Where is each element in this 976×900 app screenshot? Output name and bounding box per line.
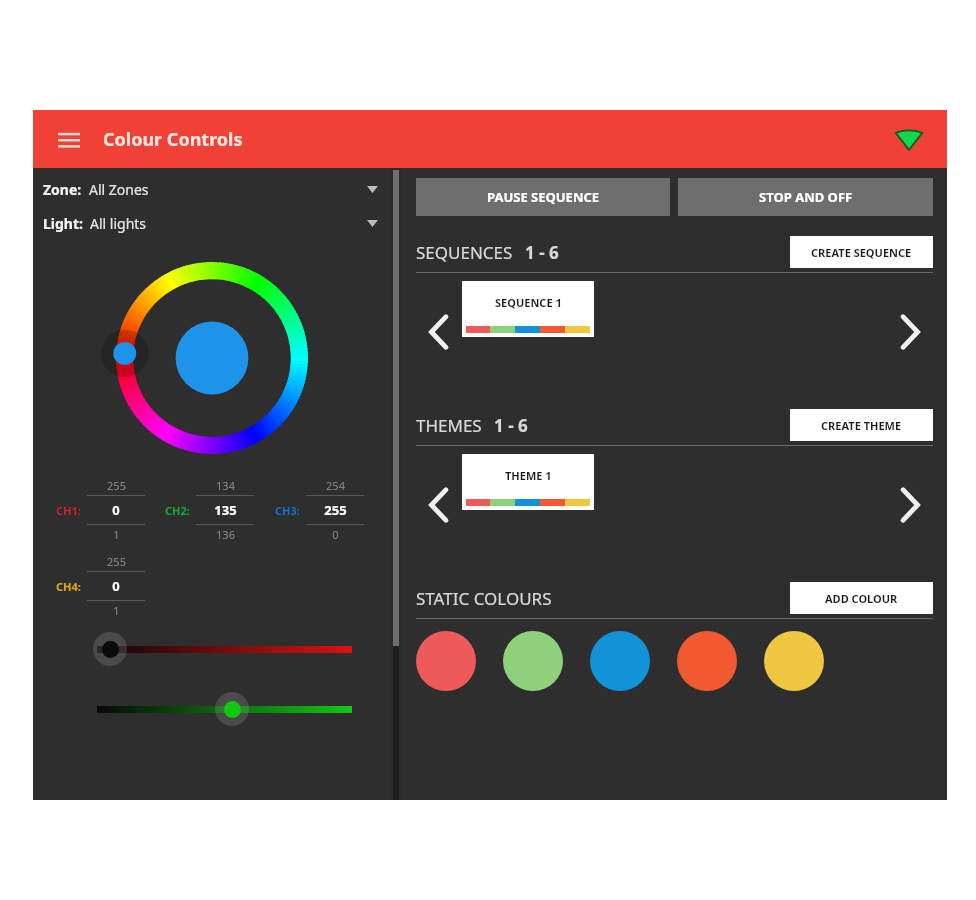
button[interactable]: ADD COLOUR [790, 582, 933, 614]
staticText: SEQUENCE 1 [495, 295, 562, 310]
staticText: 1 [113, 527, 120, 542]
staticText: ADD COLOUR [825, 591, 898, 606]
staticText: CH1: [56, 503, 81, 518]
staticText: CH4: [56, 579, 81, 594]
button[interactable]: 134 [196, 478, 254, 542]
button[interactable]: Static colour swatch [590, 631, 650, 691]
staticText: 1 - 6 [525, 241, 559, 264]
staticText: STOP AND OFF [759, 188, 853, 206]
staticText: Light: [43, 214, 83, 233]
staticText: 135 [214, 501, 237, 519]
button[interactable]: STOP AND OFF [678, 178, 933, 216]
button[interactable]: 255 [87, 554, 145, 618]
staticText: All lights [90, 214, 147, 233]
staticText: THEMES [416, 414, 482, 437]
button[interactable]: Static colour swatch [764, 631, 824, 691]
button[interactable]: Brightness slider [33, 632, 390, 666]
staticText: 136 [216, 527, 235, 542]
button[interactable]: 255 [87, 478, 145, 542]
staticText: 134 [216, 478, 235, 493]
button[interactable]: Static colour swatch [677, 631, 737, 691]
staticText: THEME 1 [505, 468, 552, 483]
staticText: 0 [112, 577, 120, 595]
button[interactable]: Static colour swatch [416, 631, 476, 691]
staticText: STATIC COLOURS [416, 587, 552, 610]
button[interactable]: Next [887, 482, 933, 528]
staticText: SEQUENCES [416, 241, 513, 264]
button[interactable]: Zone: [33, 176, 390, 202]
staticText: Colour Controls [103, 127, 243, 152]
button[interactable]: Next [887, 309, 933, 355]
staticText: Zone: [43, 180, 82, 199]
button[interactable]: Light: [33, 210, 390, 236]
button[interactable]: Previous [416, 482, 462, 528]
button[interactable]: Open navigation menu [49, 119, 89, 159]
staticText: PAUSE SEQUENCE [487, 188, 600, 206]
button[interactable]: CREATE THEME [790, 409, 933, 441]
staticText: 255 [324, 501, 347, 519]
button[interactable]: PAUSE SEQUENCE [416, 178, 670, 216]
button[interactable]: Static colour swatch [503, 631, 563, 691]
staticText: 255 [107, 478, 126, 493]
staticText: CREATE THEME [821, 418, 902, 433]
button[interactable]: CREATE SEQUENCE [790, 236, 933, 268]
button[interactable]: 254 [306, 478, 364, 542]
staticText: CH3: [275, 503, 300, 518]
staticText: All Zones [89, 180, 149, 199]
button[interactable]: Brightness slider [33, 692, 390, 726]
button[interactable]: THEME 1 [462, 454, 594, 510]
staticText: 1 - 6 [494, 414, 528, 437]
button[interactable]: Previous [416, 309, 462, 355]
button[interactable]: Connection status [889, 119, 929, 159]
staticText: CREATE SEQUENCE [811, 245, 912, 260]
staticText: 254 [326, 478, 345, 493]
staticText: 1 [113, 603, 120, 618]
button[interactable]: SEQUENCE 1 [462, 281, 594, 337]
staticText: 255 [107, 554, 126, 569]
staticText: 0 [112, 501, 120, 519]
staticText: 0 [332, 527, 339, 542]
staticText: CH2: [165, 503, 190, 518]
